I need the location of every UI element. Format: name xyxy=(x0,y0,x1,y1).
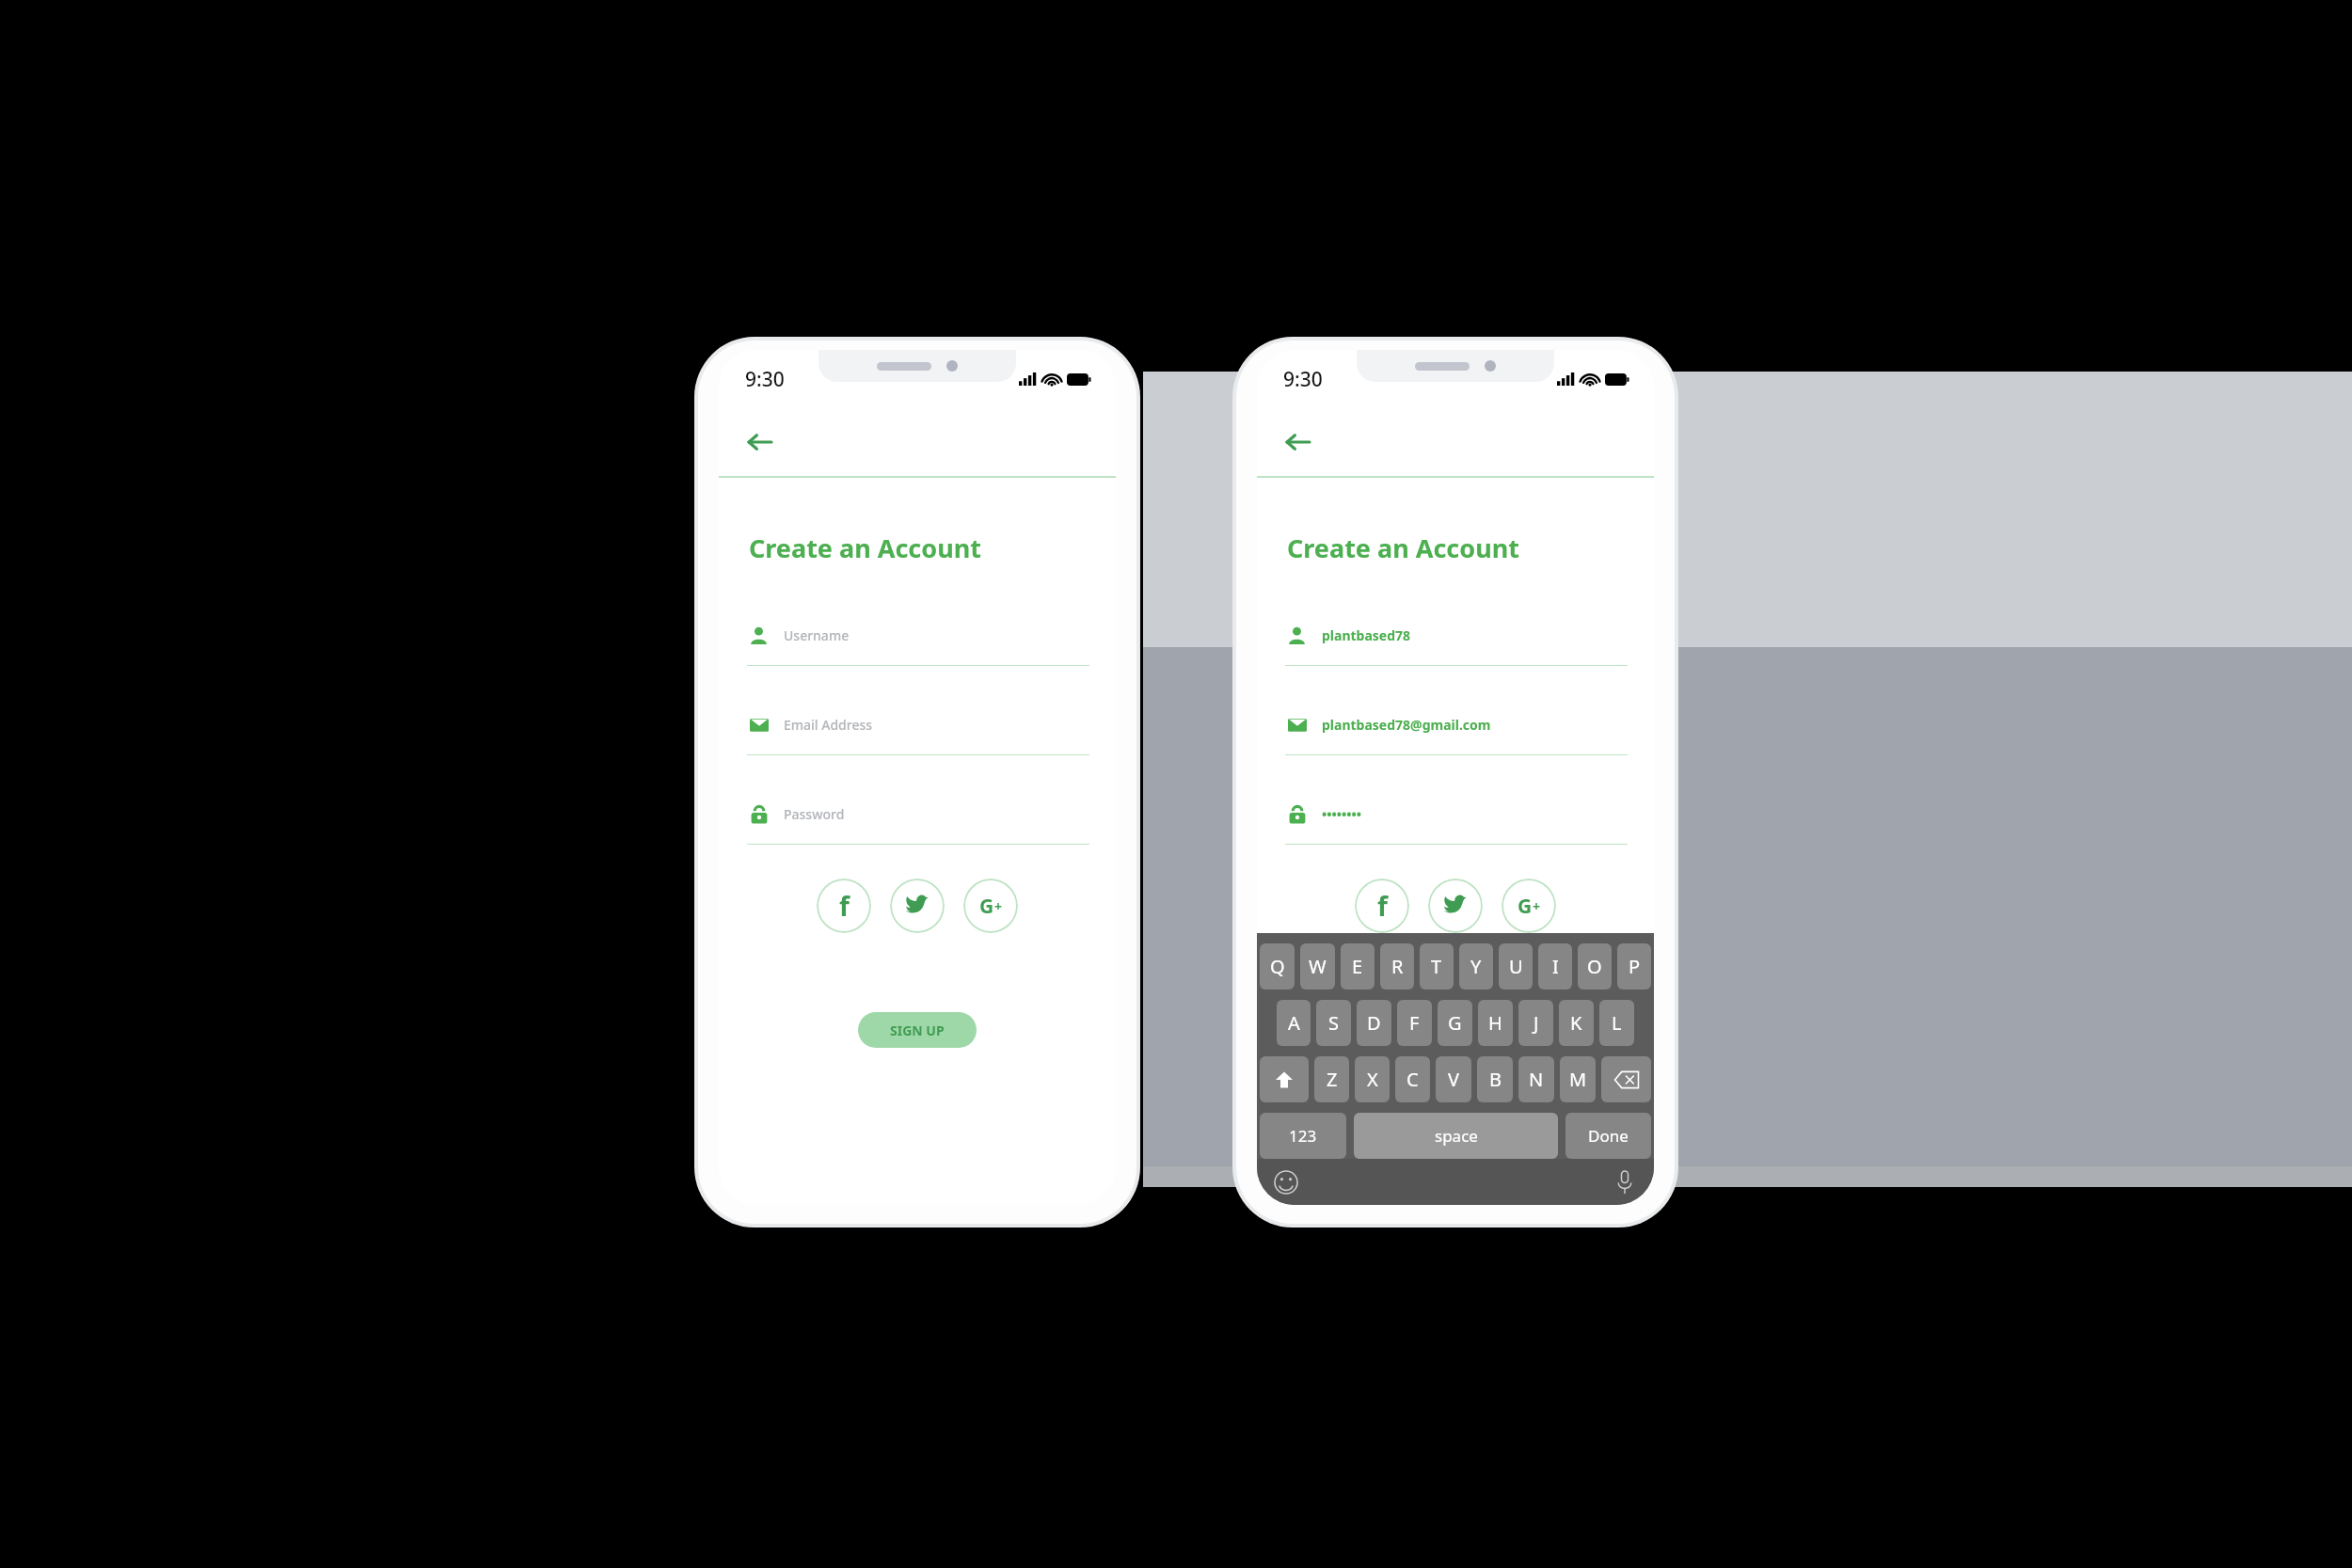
staticText: L xyxy=(1612,1010,1622,1036)
button[interactable]: N xyxy=(1518,1056,1554,1102)
staticText: Create an Account xyxy=(749,531,981,565)
button[interactable]: Shift xyxy=(1260,1056,1309,1102)
staticText: W xyxy=(1309,954,1327,979)
staticText: Y xyxy=(1470,954,1482,979)
staticText: G xyxy=(979,893,994,920)
button[interactable]: Sign up with Twitter xyxy=(1428,879,1483,933)
button[interactable]: S xyxy=(1316,1000,1351,1046)
staticText: 123 xyxy=(1289,1125,1317,1147)
button[interactable]: L xyxy=(1599,1000,1634,1046)
button[interactable]: plantbased78 xyxy=(1257,626,1654,666)
staticText: Done xyxy=(1588,1125,1629,1147)
button[interactable]: Username xyxy=(719,626,1116,666)
staticText: G xyxy=(1448,1010,1462,1036)
staticText: 9:30 xyxy=(745,366,785,393)
button[interactable]: E xyxy=(1341,943,1375,990)
staticText: T xyxy=(1431,954,1442,979)
button[interactable]: Password xyxy=(719,804,1116,845)
staticText: + xyxy=(1533,897,1541,915)
staticText: •••••••• xyxy=(1322,805,1362,823)
staticText: 9:30 xyxy=(1283,366,1323,393)
button[interactable]: •••••••• xyxy=(1257,804,1654,845)
staticText: Email Address xyxy=(784,716,873,734)
button[interactable]: Back xyxy=(738,420,781,464)
staticText: I xyxy=(1552,954,1559,979)
button[interactable]: Z xyxy=(1314,1056,1349,1102)
button[interactable]: Voice input xyxy=(1609,1166,1641,1198)
staticText: K xyxy=(1570,1010,1582,1036)
button[interactable]: P xyxy=(1617,943,1651,990)
button[interactable]: plantbased78@gmail.com xyxy=(1257,715,1654,755)
staticText: F xyxy=(1409,1010,1420,1036)
button[interactable]: space xyxy=(1354,1113,1558,1159)
staticText: A xyxy=(1288,1010,1300,1036)
button[interactable]: Done xyxy=(1565,1113,1651,1159)
button[interactable]: B xyxy=(1477,1056,1513,1102)
staticText: J xyxy=(1534,1010,1539,1036)
staticText: Z xyxy=(1327,1067,1338,1092)
staticText: V xyxy=(1448,1067,1459,1092)
staticText: P xyxy=(1629,954,1641,979)
staticText: Password xyxy=(784,805,845,823)
button[interactable]: J xyxy=(1518,1000,1553,1046)
staticText: G xyxy=(1518,893,1533,920)
staticText: SIGN UP xyxy=(890,1022,945,1039)
staticText: plantbased78 xyxy=(1322,626,1411,644)
staticText: R xyxy=(1391,954,1404,979)
button[interactable]: R xyxy=(1380,943,1414,990)
button[interactable]: X xyxy=(1355,1056,1390,1102)
staticText: f xyxy=(839,888,850,924)
button[interactable]: M xyxy=(1560,1056,1596,1102)
button[interactable]: Back xyxy=(1276,420,1319,464)
staticText: Username xyxy=(784,626,850,644)
staticText: H xyxy=(1488,1010,1502,1036)
button[interactable]: Email Address xyxy=(719,715,1116,755)
button[interactable]: SIGN UP xyxy=(858,1012,977,1048)
button[interactable]: U xyxy=(1499,943,1533,990)
staticText: N xyxy=(1529,1067,1544,1092)
staticText: O xyxy=(1587,954,1602,979)
staticText: Q xyxy=(1270,954,1285,979)
staticText: space xyxy=(1435,1125,1478,1147)
button[interactable]: Sign up with Facebook xyxy=(1355,879,1409,933)
button[interactable]: Emoji xyxy=(1270,1166,1302,1198)
staticText: f xyxy=(1377,888,1388,924)
staticText: D xyxy=(1367,1010,1381,1036)
button[interactable]: 123 xyxy=(1260,1113,1346,1159)
staticText: U xyxy=(1509,954,1523,979)
button[interactable]: W xyxy=(1300,943,1335,990)
button[interactable]: O xyxy=(1578,943,1612,990)
button[interactable]: I xyxy=(1538,943,1572,990)
staticText: E xyxy=(1352,954,1363,979)
staticText: Create an Account xyxy=(1287,531,1519,565)
staticText: B xyxy=(1489,1067,1502,1092)
staticText: + xyxy=(994,897,1003,915)
button[interactable]: Sign up with Google xyxy=(1502,879,1556,933)
staticText: plantbased78@gmail.com xyxy=(1322,716,1491,734)
staticText: X xyxy=(1367,1067,1378,1092)
button[interactable]: Sign up with Facebook xyxy=(817,879,871,933)
button[interactable]: Q xyxy=(1260,943,1295,990)
button[interactable]: H xyxy=(1478,1000,1513,1046)
button[interactable]: D xyxy=(1357,1000,1391,1046)
button[interactable]: T xyxy=(1420,943,1454,990)
button[interactable]: Backspace xyxy=(1601,1056,1651,1102)
button[interactable]: Sign up with Twitter xyxy=(890,879,945,933)
button[interactable]: G xyxy=(1438,1000,1472,1046)
button[interactable]: F xyxy=(1397,1000,1432,1046)
staticText: C xyxy=(1406,1067,1419,1092)
button[interactable]: C xyxy=(1395,1056,1430,1102)
button[interactable]: V xyxy=(1436,1056,1471,1102)
button[interactable]: Y xyxy=(1459,943,1493,990)
button[interactable]: Sign up with Google xyxy=(963,879,1018,933)
staticText: S xyxy=(1328,1010,1339,1036)
staticText: M xyxy=(1569,1067,1587,1092)
button[interactable]: A xyxy=(1277,1000,1311,1046)
button[interactable]: K xyxy=(1559,1000,1594,1046)
